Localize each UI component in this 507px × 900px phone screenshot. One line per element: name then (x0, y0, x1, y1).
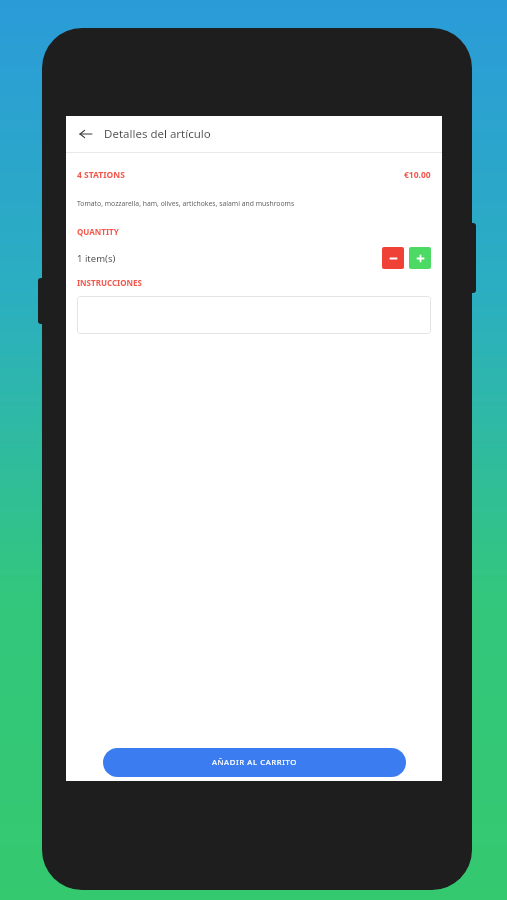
button[interactable]: Instrucciones (77, 296, 431, 334)
staticText: AÑADIR AL CARRITO (212, 757, 297, 768)
button[interactable]: Decrease quantity (382, 247, 404, 269)
staticText: Detalles del artículo (104, 126, 211, 142)
staticText: €10.00 (404, 169, 431, 181)
staticText: 4 STATIONS (77, 169, 125, 181)
button[interactable]: Back (72, 120, 100, 148)
button[interactable]: AÑADIR AL CARRITO (103, 748, 406, 777)
staticText: INSTRUCCIONES (77, 277, 142, 288)
button[interactable]: Increase quantity (409, 247, 431, 269)
staticText: Tomato, mozzarella, ham, olives, articho… (77, 199, 295, 208)
staticText: QUANTITY (77, 226, 119, 237)
staticText: 1 item(s) (77, 252, 116, 265)
